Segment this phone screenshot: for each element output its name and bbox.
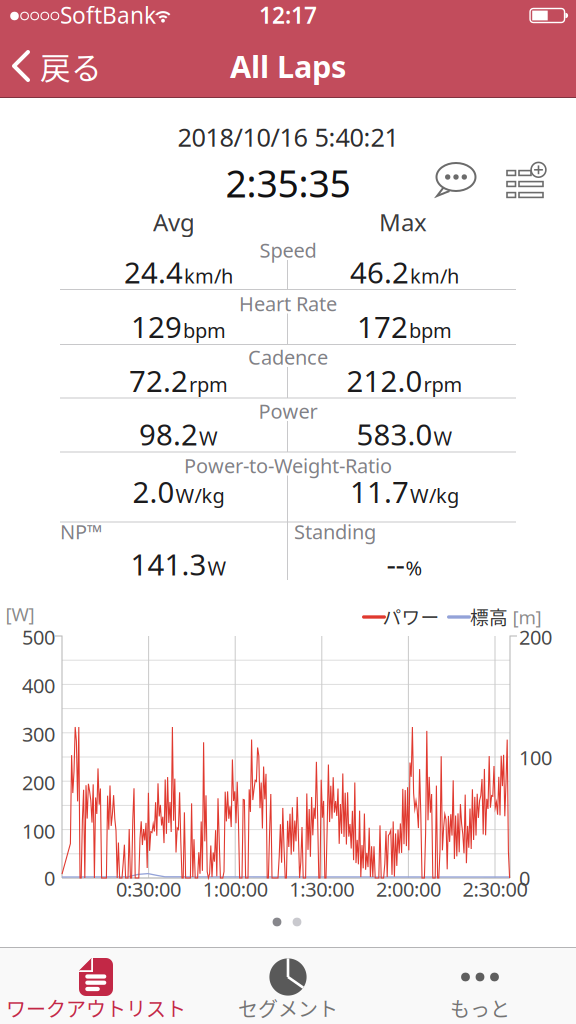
staticText: -- bbox=[386, 544, 404, 583]
staticText: Max bbox=[379, 206, 427, 238]
staticText: 72.2 bbox=[129, 361, 188, 400]
staticText: 172 bbox=[357, 307, 408, 346]
staticText: 2.0 bbox=[132, 472, 174, 511]
staticText: bpm bbox=[183, 317, 226, 343]
staticText: ワークアウトリスト bbox=[6, 993, 186, 1022]
staticText: [m] bbox=[512, 605, 541, 629]
staticText: km/h bbox=[410, 262, 459, 289]
staticText: 0 bbox=[44, 865, 55, 891]
staticText: 標高 bbox=[470, 602, 508, 629]
staticText: [W] bbox=[5, 602, 34, 626]
staticText: Avg bbox=[153, 206, 195, 238]
button[interactable]: Back bbox=[0, 40, 112, 92]
staticText: 141.3 bbox=[130, 544, 206, 583]
staticText: 2018/10/16 5:40:21 bbox=[177, 120, 398, 154]
staticText: rpm bbox=[423, 371, 462, 397]
staticText: NP™ bbox=[60, 518, 102, 545]
button[interactable]: セグメント bbox=[192, 947, 384, 1024]
staticText: rpm bbox=[189, 371, 228, 397]
staticText: 2:35:35 bbox=[225, 158, 350, 208]
staticText: 583.0 bbox=[356, 414, 432, 453]
staticText: W bbox=[199, 424, 218, 451]
staticText: 300 bbox=[22, 721, 55, 747]
staticText: W/kg bbox=[410, 482, 459, 508]
staticText: 500 bbox=[22, 624, 55, 650]
staticText: % bbox=[405, 554, 422, 581]
staticText: 98.2 bbox=[139, 414, 198, 453]
staticText: Power bbox=[258, 398, 317, 424]
staticText: W/kg bbox=[175, 482, 224, 508]
staticText: Power-to-Weight-Ratio bbox=[184, 452, 392, 479]
staticText: 0 bbox=[519, 865, 530, 891]
staticText: 1:00:00 bbox=[203, 876, 268, 902]
staticText: 24.4 bbox=[124, 252, 183, 291]
button[interactable]: Edit lap fields bbox=[506, 161, 548, 203]
staticText: もっと bbox=[450, 993, 510, 1022]
staticText: Standing bbox=[294, 518, 376, 545]
staticText: 46.2 bbox=[350, 252, 409, 291]
staticText: 11.7 bbox=[350, 472, 409, 511]
staticText: 戻る bbox=[40, 44, 102, 88]
staticText: W bbox=[207, 554, 226, 581]
staticText: 212.0 bbox=[346, 361, 422, 400]
staticText: セグメント bbox=[238, 993, 338, 1022]
staticText: 2:00:00 bbox=[376, 876, 441, 902]
button[interactable]: もっと bbox=[384, 947, 576, 1024]
staticText: 1:30:00 bbox=[289, 876, 354, 902]
staticText: 200 bbox=[519, 624, 552, 650]
button[interactable]: Notes bbox=[432, 163, 480, 203]
staticText: All Laps bbox=[230, 46, 346, 86]
staticText: Heart Rate bbox=[239, 290, 337, 317]
staticText: 129 bbox=[131, 307, 182, 346]
staticText: 100 bbox=[22, 818, 55, 844]
staticText: パワー bbox=[382, 602, 439, 629]
staticText: Cadence bbox=[248, 344, 328, 370]
staticText: 200 bbox=[22, 769, 55, 796]
staticText: 2:30:00 bbox=[462, 876, 527, 902]
staticText: 100 bbox=[519, 744, 552, 771]
button[interactable]: ワークアウトリスト bbox=[0, 947, 192, 1024]
staticText: W bbox=[433, 424, 452, 451]
staticText: 400 bbox=[22, 672, 55, 699]
staticText: 0:30:00 bbox=[116, 876, 181, 902]
staticText: SoftBank bbox=[60, 0, 156, 30]
staticText: bpm bbox=[409, 317, 452, 343]
staticText: 12:17 bbox=[259, 0, 317, 30]
staticText: Speed bbox=[259, 237, 316, 263]
staticText: km/h bbox=[184, 262, 233, 289]
